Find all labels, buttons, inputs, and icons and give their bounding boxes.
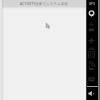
button[interactable]: Messages xyxy=(87,75,96,84)
staticText: GPS xyxy=(89,2,96,6)
staticText: ACTIVITY全体でシステム名名 xyxy=(20,1,68,6)
button[interactable]: Battery xyxy=(87,65,96,74)
button[interactable]: Rotate xyxy=(87,36,96,45)
button[interactable]: Screenshot xyxy=(87,43,96,52)
button[interactable]: ACTIVITY全体でシステム名名 xyxy=(2,0,86,7)
button[interactable]: Cellular xyxy=(87,60,96,69)
button[interactable]: Camera xyxy=(87,50,96,59)
button[interactable]: Power xyxy=(87,19,96,28)
button[interactable]: Volume up xyxy=(87,26,96,35)
button[interactable]: Location xyxy=(87,9,96,18)
button[interactable]: Volume xyxy=(87,89,96,98)
